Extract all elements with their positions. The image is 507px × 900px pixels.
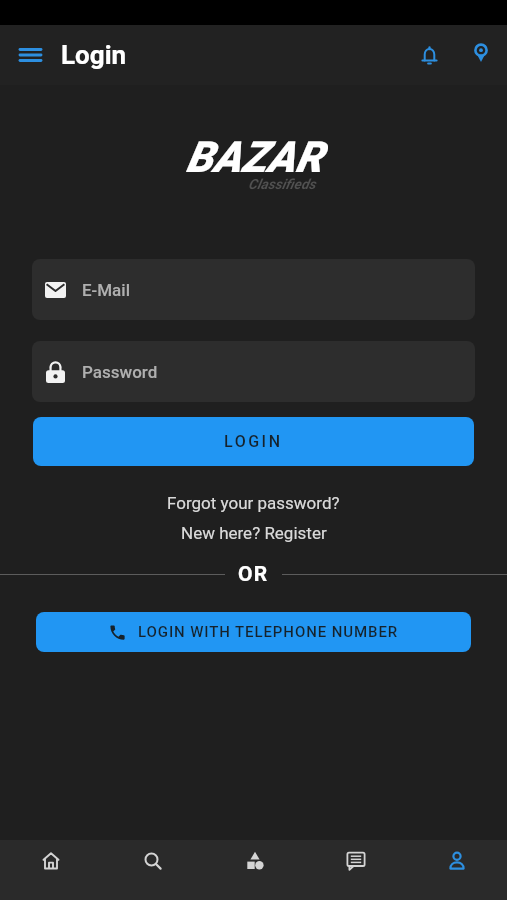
- button[interactable]: [409, 35, 449, 75]
- button[interactable]: Forgot your password?: [167, 493, 340, 513]
- staticText: Password: [82, 362, 158, 382]
- button[interactable]: Password: [32, 341, 475, 402]
- button[interactable]: E-Mail: [32, 259, 475, 320]
- button[interactable]: [12, 37, 48, 73]
- staticText: LOGIN WITH TELEPHONE NUMBER: [138, 623, 399, 641]
- staticText: BAZAR: [186, 132, 323, 182]
- button[interactable]: [406, 840, 507, 900]
- button[interactable]: LOGIN: [33, 417, 474, 466]
- button[interactable]: LOGIN WITH TELEPHONE NUMBER: [36, 612, 471, 652]
- button[interactable]: [102, 840, 204, 900]
- button[interactable]: [305, 840, 406, 900]
- staticText: Login: [61, 40, 127, 70]
- button[interactable]: New here? Register: [181, 523, 327, 543]
- staticText: OR: [238, 562, 269, 587]
- staticText: LOGIN: [224, 432, 283, 451]
- button[interactable]: [0, 840, 102, 900]
- button[interactable]: [461, 35, 501, 75]
- button[interactable]: [204, 840, 305, 900]
- staticText: E-Mail: [82, 280, 130, 300]
- staticText: Classifieds: [248, 176, 316, 192]
